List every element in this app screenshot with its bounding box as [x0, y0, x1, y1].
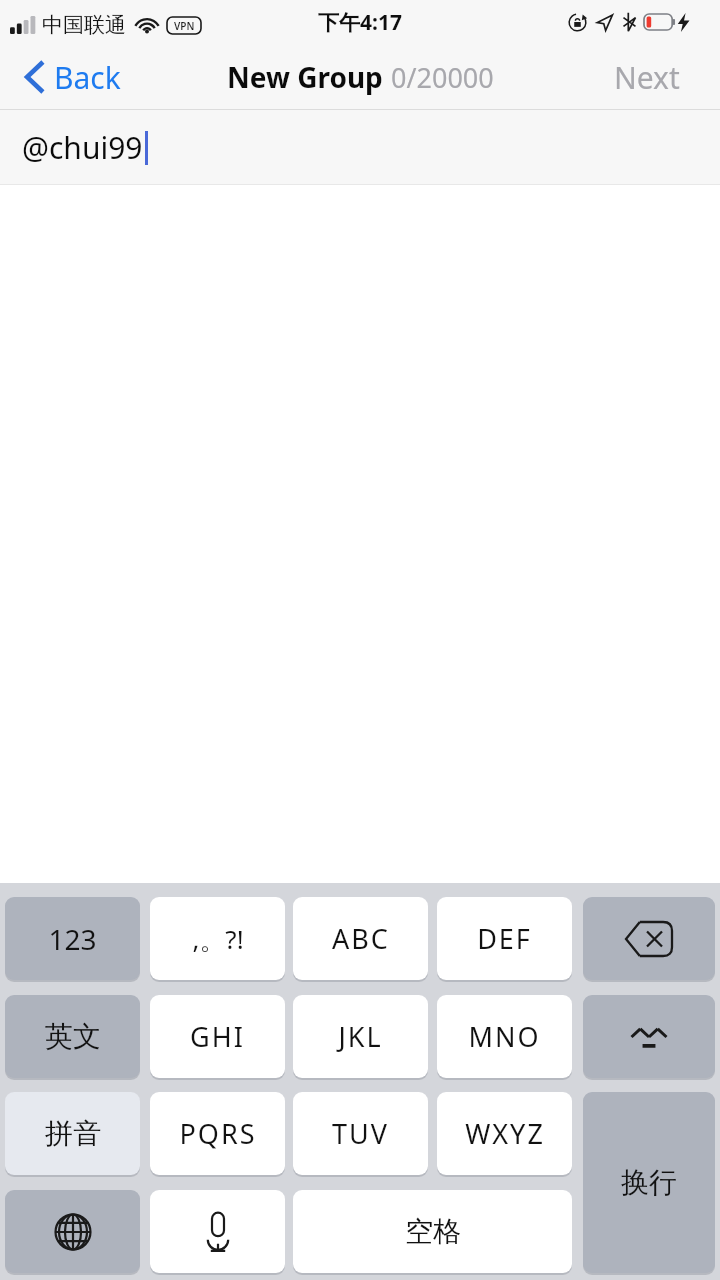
- staticText: 123: [48, 920, 97, 958]
- staticText: 0/20000: [391, 59, 494, 96]
- staticText: TUV: [332, 1115, 389, 1152]
- staticText: DEF: [477, 920, 532, 957]
- button[interactable]: Delete: [583, 897, 715, 980]
- staticText: JKL: [338, 1018, 383, 1055]
- staticText: 英文: [45, 1019, 101, 1054]
- button[interactable]: JKL: [293, 995, 428, 1078]
- button[interactable]: MNO: [437, 995, 572, 1078]
- button[interactable]: WXYZ: [437, 1092, 572, 1175]
- staticText: VPN: [174, 19, 195, 33]
- staticText: New Group: [227, 58, 383, 96]
- button[interactable]: Next: [604, 44, 690, 110]
- staticText: 空格: [405, 1214, 461, 1249]
- button[interactable]: ABC: [293, 897, 428, 980]
- staticText: @chui99: [22, 127, 143, 168]
- button[interactable]: @chui99: [0, 110, 720, 184]
- button[interactable]: Emoji: [583, 995, 715, 1078]
- staticText: Next: [614, 57, 680, 98]
- button[interactable]: 英文: [5, 995, 140, 1078]
- button[interactable]: ,。?!: [150, 897, 285, 980]
- staticText: 下午4:17: [318, 8, 402, 37]
- staticText: GHI: [190, 1018, 245, 1055]
- button[interactable]: GHI: [150, 995, 285, 1078]
- staticText: ,。?!: [192, 921, 244, 957]
- staticText: 中国联通: [42, 12, 126, 38]
- button[interactable]: PQRS: [150, 1092, 285, 1175]
- button[interactable]: Switch keyboard: [5, 1190, 140, 1273]
- button[interactable]: Voice input: [150, 1190, 285, 1273]
- staticText: 拼音: [45, 1116, 101, 1151]
- staticText: ABC: [332, 920, 390, 957]
- button[interactable]: 空格: [293, 1190, 572, 1273]
- button[interactable]: TUV: [293, 1092, 428, 1175]
- button[interactable]: DEF: [437, 897, 572, 980]
- button[interactable]: 换行: [583, 1092, 715, 1273]
- staticText: 换行: [621, 1165, 677, 1200]
- staticText: MNO: [468, 1018, 541, 1055]
- button[interactable]: 拼音: [5, 1092, 140, 1175]
- button[interactable]: Back: [16, 44, 129, 110]
- button[interactable]: 123: [5, 897, 140, 980]
- staticText: PQRS: [179, 1115, 257, 1152]
- staticText: WXYZ: [465, 1115, 545, 1152]
- staticText: Back: [54, 57, 121, 98]
